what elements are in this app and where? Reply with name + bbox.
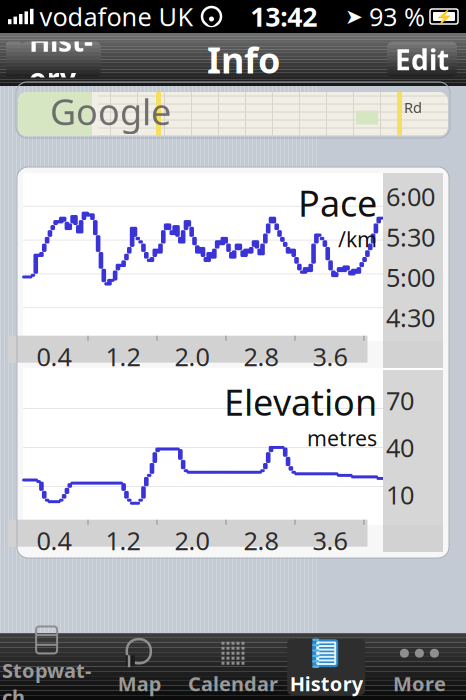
staticText: 2.8: [243, 340, 278, 373]
button[interactable]: History: [0, 41, 101, 77]
staticText: History: [290, 670, 363, 697]
staticText: Google: [50, 87, 171, 135]
staticText: More: [393, 670, 446, 697]
staticText: 0.4: [36, 340, 71, 373]
staticText: Edit: [395, 41, 449, 78]
staticText: 5:00: [386, 260, 435, 294]
staticText: 3.6: [312, 524, 347, 557]
staticText: Stopwatch: [2, 657, 91, 700]
staticText: Map: [118, 670, 162, 697]
staticText: Elevation: [224, 378, 377, 426]
staticText: Calendar: [188, 670, 278, 697]
button[interactable]: Edit: [387, 41, 466, 77]
staticText: Rd: [404, 97, 422, 117]
button[interactable]: Calendar: [186, 635, 280, 699]
staticText: ➤: [345, 4, 363, 29]
staticText: 6:00: [386, 180, 435, 213]
staticText: History: [29, 22, 93, 97]
staticText: 2.0: [174, 524, 209, 557]
staticText: 1.2: [105, 340, 140, 373]
button[interactable]: History: [280, 635, 373, 699]
staticText: 70: [386, 383, 414, 417]
staticText: 2.0: [174, 340, 209, 373]
button[interactable]: Stopwatch: [0, 635, 93, 699]
button[interactable]: More: [373, 635, 466, 699]
staticText: metres: [307, 424, 377, 452]
staticText: 40: [386, 431, 414, 464]
staticText: 4:30: [386, 301, 435, 334]
staticText: 5:30: [386, 220, 435, 254]
staticText: 93 %: [369, 0, 425, 33]
staticText: 13:42: [250, 0, 317, 34]
staticText: ⚡: [435, 8, 453, 25]
staticText: Pace: [298, 179, 377, 227]
staticText: vodafone UK: [39, 0, 193, 33]
staticText: 3.6: [312, 340, 347, 373]
staticText: 2.8: [243, 524, 278, 557]
staticText: Info: [207, 36, 281, 83]
staticText: 1.2: [105, 524, 140, 557]
button[interactable]: Map: [93, 635, 186, 699]
staticText: 10: [386, 478, 414, 511]
staticText: 0.4: [36, 524, 71, 557]
staticText: /km: [338, 225, 377, 253]
